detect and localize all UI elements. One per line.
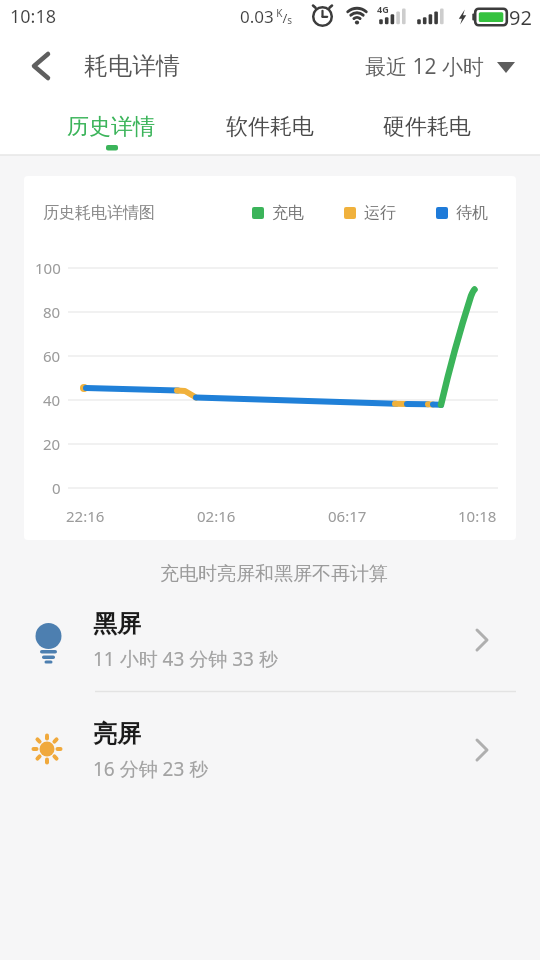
staticText: 06:17 [328,506,367,526]
button[interactable] [32,100,190,154]
staticText: 10:18 [458,506,497,526]
button[interactable] [24,176,516,540]
staticText: 100 [35,258,61,278]
staticText: 40 [43,390,61,410]
staticText: 最近 12 小时 [365,52,484,81]
staticText: 硬件耗电 [383,113,471,141]
staticText: 02:16 [197,506,236,526]
staticText: 20 [43,434,61,454]
staticText: 亮屏 [93,719,141,749]
staticText: 充电时亮屏和黑屏不再计算 [160,562,388,586]
staticText: 92 [509,4,532,31]
button[interactable] [18,44,64,88]
staticText: 待机 [456,203,488,223]
staticText: 16 分钟 23 秒 [93,756,209,782]
button[interactable] [0,598,540,690]
staticText: 80 [43,302,61,322]
button[interactable] [350,44,530,90]
staticText: 10:18 [10,4,57,29]
staticText: 历史详情 [67,113,155,141]
staticText: 4G [377,3,389,15]
button[interactable] [190,100,348,154]
button[interactable] [0,694,540,786]
staticText: 0 [52,478,61,498]
staticText: 黑屏 [93,609,141,639]
button[interactable] [348,100,506,154]
staticText: 60 [43,346,61,366]
staticText: 0.03 K/s [240,5,293,28]
staticText: 耗电详情 [84,51,180,81]
staticText: 历史耗电详情图 [43,203,155,223]
staticText: 22:16 [66,506,105,526]
staticText: 运行 [364,203,396,223]
staticText: 软件耗电 [226,113,314,141]
staticText: 充电 [272,203,304,223]
staticText: 11 小时 43 分钟 33 秒 [93,646,278,672]
